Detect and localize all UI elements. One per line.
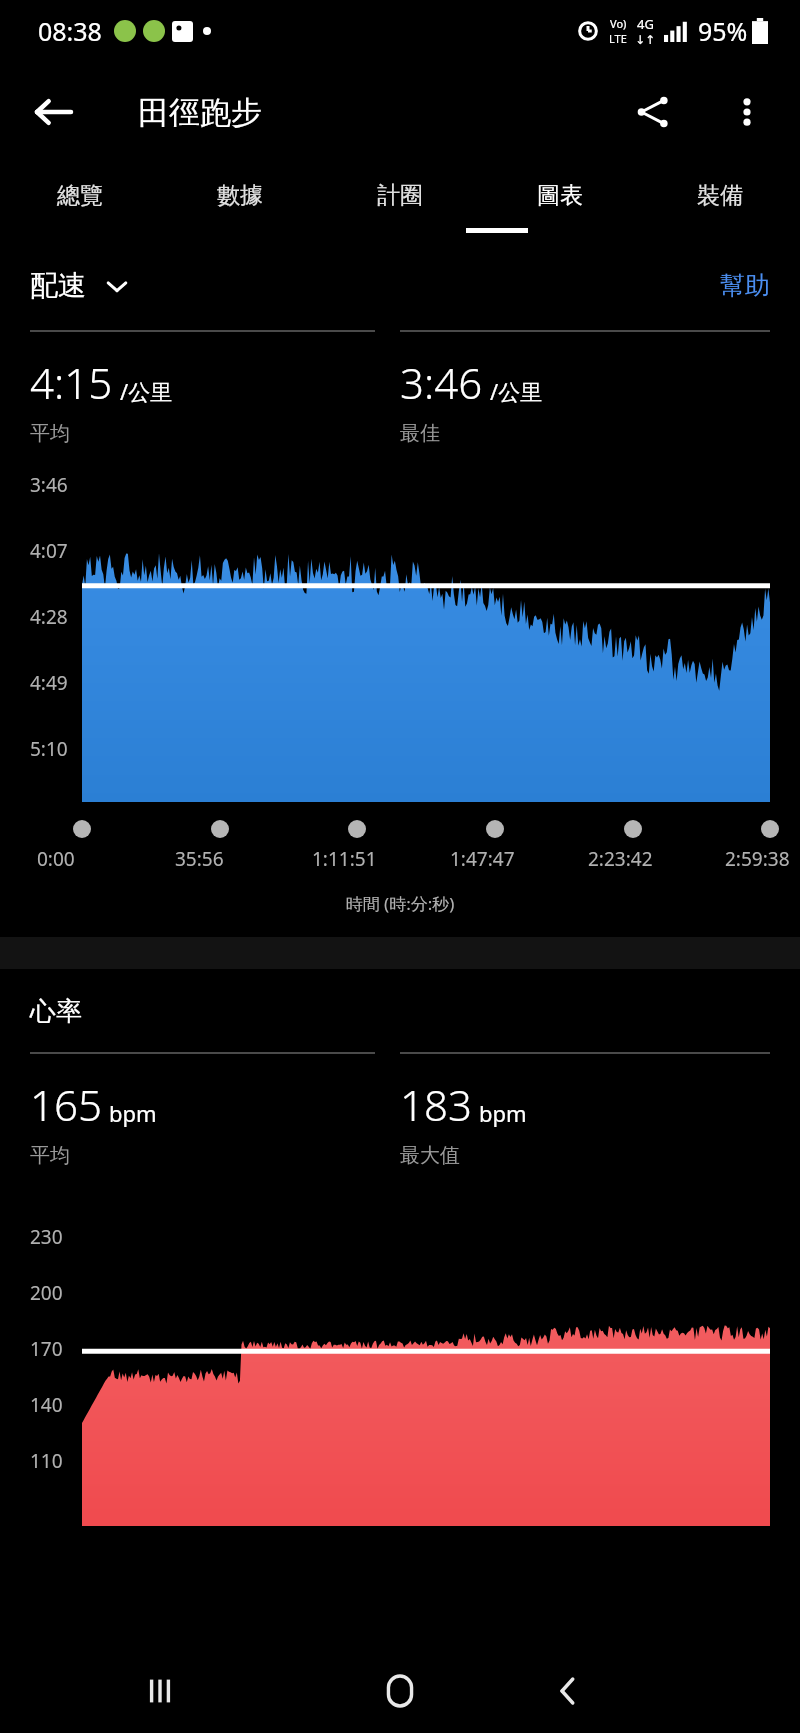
button[interactable]: Home [368,1659,432,1723]
button[interactable]: 配速 [30,268,130,303]
staticText: /公里 [120,376,173,406]
staticText: 165 [30,1076,102,1133]
staticText: 230 [30,1224,63,1250]
button[interactable]: 數據 [160,162,320,228]
staticText: 4:28 [30,604,68,630]
staticText: 1:47:47 [450,846,515,872]
staticText: 田徑跑步 [138,93,262,132]
staticText: 170 [30,1336,63,1362]
button[interactable]: Back [536,1659,600,1723]
staticText: 95% [698,14,748,48]
staticText: 140 [30,1392,63,1418]
staticText: 幫助 [720,270,770,301]
staticText: 心率 [30,995,82,1028]
button[interactable]: 裝備 [640,162,800,228]
staticText: 最佳 [400,421,440,446]
staticText: ↓↑ [635,33,656,47]
staticText: 183 [400,1076,472,1133]
button[interactable]: 圖表 [480,162,640,228]
staticText: 200 [30,1280,63,1306]
staticText: /公里 [490,376,543,406]
staticText: 3:46 [30,472,68,498]
staticText: 4G [637,15,654,33]
staticText: 最大值 [400,1143,460,1168]
staticText: 5:10 [30,736,68,762]
button[interactable]: 計圈 [320,162,480,228]
staticText: 2:23:42 [588,846,653,872]
button[interactable]: Back [22,81,84,143]
staticText: 數據 [217,181,263,210]
button[interactable]: Share [622,81,684,143]
staticText: 總覽 [57,181,103,210]
button[interactable]: More options [716,81,778,143]
staticText: 4:15 [30,354,113,411]
staticText: 計圈 [377,181,423,210]
staticText: 4:49 [30,670,68,696]
staticText: 35:56 [175,846,224,872]
staticText: 裝備 [697,181,743,210]
staticText: 圖表 [537,181,583,210]
staticText: bpm [479,1098,527,1128]
staticText: 時間 (時:分:秒) [0,892,800,915]
staticText: 平均 [30,421,70,446]
staticText: 3:46 [400,354,483,411]
staticText: 4:07 [30,538,68,564]
staticText: 110 [30,1448,63,1474]
staticText: 2:59:38 [725,846,790,872]
button[interactable]: 幫助 [720,270,770,301]
staticText: 08:38 [38,14,102,48]
button[interactable]: 總覽 [0,162,160,228]
staticText: 0:00 [37,846,75,872]
button[interactable]: Recents [128,1659,192,1723]
staticText: Vo) [610,16,627,31]
staticText: 配速 [30,268,86,303]
staticText: 平均 [30,1143,70,1168]
staticText: 1:11:51 [312,846,377,872]
staticText: LTE [609,31,627,46]
staticText: bpm [109,1098,157,1128]
